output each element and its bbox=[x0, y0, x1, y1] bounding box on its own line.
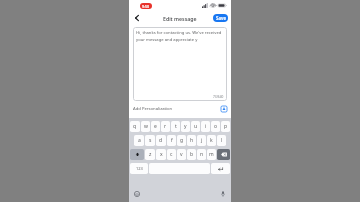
button[interactable]: l bbox=[217, 135, 226, 146]
staticText: 9:50 bbox=[142, 4, 150, 9]
button[interactable]: Hi, thanks for contacting us. We've rece… bbox=[133, 27, 227, 101]
staticText: j bbox=[201, 137, 203, 144]
staticText: 123 bbox=[136, 166, 143, 171]
staticText: x bbox=[160, 151, 163, 158]
staticText: o bbox=[214, 123, 218, 130]
staticText: 73/640 bbox=[213, 95, 224, 99]
button[interactable]: k bbox=[207, 135, 216, 146]
other: Add personalization bbox=[221, 106, 227, 112]
staticText: Add Personalization bbox=[133, 106, 173, 112]
button[interactable]: q bbox=[130, 121, 140, 132]
staticText: Edit message bbox=[163, 15, 197, 22]
staticText: y bbox=[184, 123, 187, 130]
button[interactable]: o bbox=[211, 121, 220, 132]
staticText: f bbox=[171, 137, 173, 144]
button[interactable]: Voice input bbox=[219, 190, 227, 198]
staticText: t bbox=[175, 123, 177, 130]
button[interactable]: v bbox=[177, 149, 186, 160]
button[interactable]: Emoji bbox=[133, 190, 141, 198]
staticText: g bbox=[180, 137, 184, 144]
button[interactable]: n bbox=[197, 149, 206, 160]
button[interactable]: s bbox=[145, 135, 155, 146]
staticText: p bbox=[224, 123, 228, 130]
button[interactable]: Backspace bbox=[217, 149, 230, 160]
button[interactable]: a bbox=[134, 135, 144, 146]
button[interactable]: Save bbox=[213, 14, 228, 22]
staticText: h bbox=[190, 137, 194, 144]
staticText: b bbox=[190, 151, 194, 158]
staticText: d bbox=[159, 137, 163, 144]
staticText: Hi, thanks for contacting us. We've rece… bbox=[136, 30, 224, 42]
button[interactable]: r bbox=[161, 121, 170, 132]
button[interactable]: y bbox=[181, 121, 190, 132]
button[interactable]: j bbox=[197, 135, 206, 146]
staticText: z bbox=[149, 151, 152, 158]
staticText: Save bbox=[216, 15, 226, 21]
staticText: q bbox=[133, 123, 137, 130]
staticText: k bbox=[210, 137, 213, 144]
button[interactable]: z bbox=[145, 149, 155, 160]
button[interactable]: e bbox=[151, 121, 160, 132]
button[interactable]: f bbox=[167, 135, 176, 146]
button[interactable]: u bbox=[191, 121, 200, 132]
staticText: w bbox=[144, 123, 148, 130]
button[interactable]: i bbox=[201, 121, 210, 132]
button[interactable]: 123 bbox=[130, 163, 148, 174]
button[interactable]: Shift bbox=[130, 149, 144, 160]
staticText: u bbox=[194, 123, 198, 130]
button[interactable]: Back bbox=[132, 13, 142, 23]
staticText: r bbox=[164, 123, 167, 130]
button[interactable]: Return bbox=[211, 163, 230, 174]
staticText: s bbox=[149, 137, 152, 144]
staticText: a bbox=[138, 137, 141, 144]
button[interactable]: t bbox=[171, 121, 180, 132]
button[interactable]: g bbox=[177, 135, 186, 146]
button[interactable]: p bbox=[221, 121, 230, 132]
staticText: m bbox=[209, 151, 214, 158]
staticText: e bbox=[154, 123, 157, 130]
button[interactable]: d bbox=[156, 135, 166, 146]
button[interactable]: h bbox=[187, 135, 196, 146]
button[interactable]: b bbox=[187, 149, 196, 160]
staticText: n bbox=[200, 151, 204, 158]
button[interactable]: c bbox=[167, 149, 176, 160]
button[interactable]: x bbox=[156, 149, 166, 160]
staticText: v bbox=[180, 151, 183, 158]
button[interactable]: w bbox=[141, 121, 150, 132]
staticText: c bbox=[170, 151, 173, 158]
staticText: i bbox=[205, 123, 207, 130]
button[interactable]: Add Personalization bbox=[133, 103, 227, 114]
staticText: l bbox=[221, 137, 223, 144]
button[interactable]: m bbox=[207, 149, 216, 160]
